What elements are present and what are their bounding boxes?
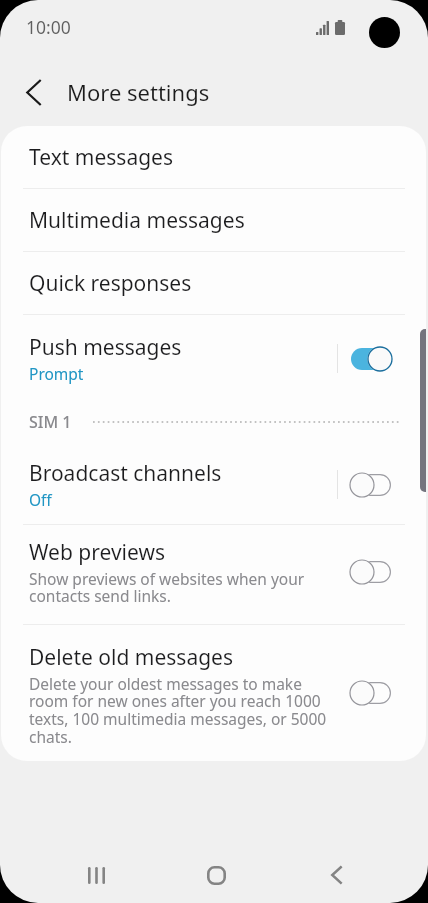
button[interactable]: Web previews xyxy=(338,552,403,592)
button[interactable]: Recents xyxy=(62,841,130,903)
button[interactable]: Text messages xyxy=(1,126,426,188)
button[interactable]: Broadcast channels xyxy=(1,446,426,524)
button[interactable]: Broadcast channels xyxy=(338,465,403,505)
staticText: 10:00 xyxy=(26,15,71,39)
button[interactable]: Push messages xyxy=(1,315,426,398)
button[interactable]: Multimedia messages xyxy=(1,189,426,251)
button[interactable]: Delete old messages xyxy=(1,625,426,761)
button[interactable]: Back xyxy=(302,841,370,903)
staticText: Quick responses xyxy=(29,269,192,298)
button[interactable]: Quick responses xyxy=(1,252,426,314)
staticText: Prompt xyxy=(29,363,84,384)
button[interactable]: Home xyxy=(182,841,250,903)
button[interactable]: Back xyxy=(10,68,58,116)
staticText: Delete your oldest messages to make room… xyxy=(29,673,335,743)
staticText: Text messages xyxy=(29,143,173,172)
staticText: Broadcast channels xyxy=(29,459,222,488)
staticText: More settings xyxy=(67,77,210,107)
staticText: Off xyxy=(29,489,52,510)
staticText: Multimedia messages xyxy=(29,206,245,235)
staticText: Show previews of websites when your cont… xyxy=(29,568,335,606)
button[interactable]: Push messages xyxy=(338,339,403,379)
button[interactable]: Delete old messages xyxy=(338,673,403,713)
button[interactable]: Web previews xyxy=(1,525,426,624)
staticText: Web previews xyxy=(29,538,165,567)
staticText: Delete old messages xyxy=(29,643,234,672)
staticText: SIM 1 xyxy=(29,411,72,433)
staticText: Push messages xyxy=(29,333,182,362)
